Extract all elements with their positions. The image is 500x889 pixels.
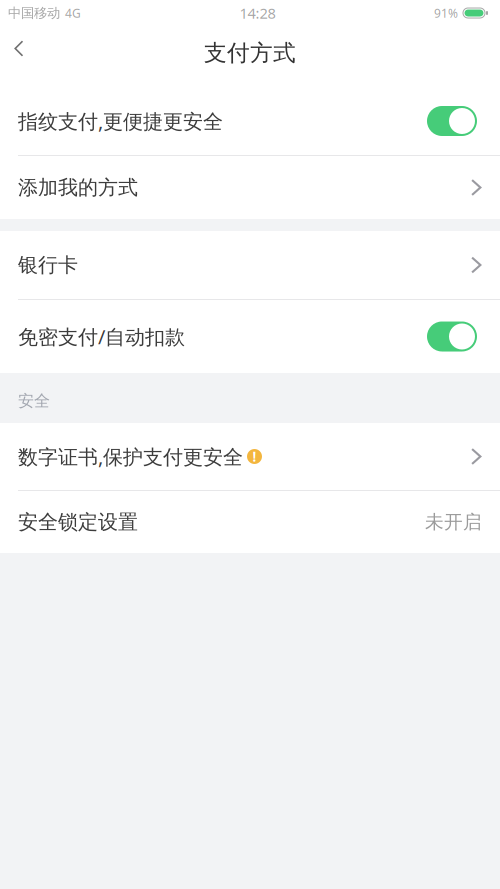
staticText: 添加我的方式: [18, 175, 138, 200]
staticText: 银行卡: [18, 253, 78, 277]
staticText: 安全: [18, 391, 50, 411]
staticText: 4G: [65, 5, 81, 21]
button[interactable]: 添加我的方式: [0, 156, 500, 219]
button[interactable]: 银行卡: [0, 231, 500, 300]
staticText: !: [252, 448, 256, 465]
button[interactable]: 指纹支付,更便捷更安全: [0, 87, 500, 156]
button[interactable]: 安全锁定设置: [0, 491, 500, 553]
staticText: 指纹支付,更便捷更安全: [18, 108, 223, 134]
staticText: 数字证书,保护支付更安全: [18, 443, 243, 470]
staticText: 未开启: [425, 510, 482, 533]
button[interactable]: Back: [0, 26, 42, 87]
staticText: 免密支付/自动扣款: [18, 323, 185, 350]
button[interactable]: 免密支付/自动扣款: [0, 300, 500, 373]
staticText: 支付方式: [204, 39, 296, 67]
staticText: 中国移动: [8, 5, 60, 21]
button[interactable]: 数字证书,保护支付更安全: [0, 423, 500, 491]
staticText: 14:28: [239, 3, 275, 23]
staticText: 安全锁定设置: [18, 510, 138, 534]
staticText: 91%: [434, 5, 458, 21]
